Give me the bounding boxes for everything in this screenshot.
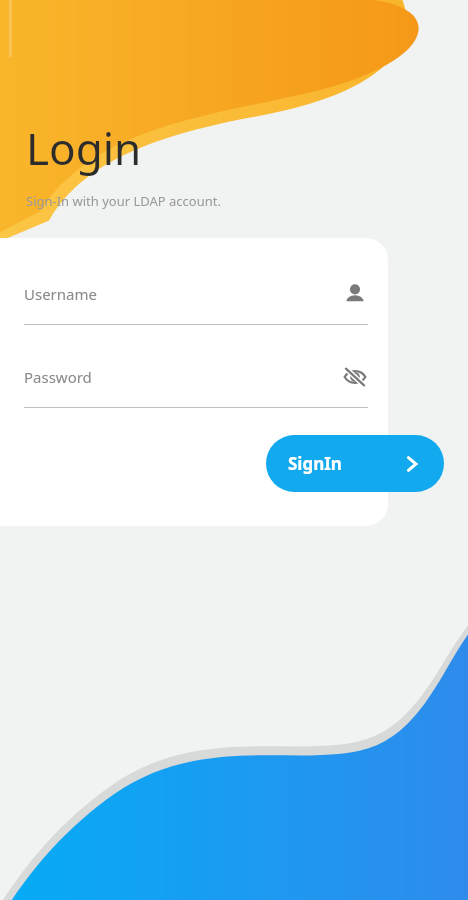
other: Show password [342,364,368,390]
staticText: Sign-In with your LDAP account. [26,192,221,210]
other: Username [342,281,368,307]
button[interactable]: SignIn [266,435,444,492]
button[interactable]: Username [24,276,368,325]
staticText: Password [24,367,92,387]
staticText: Username [24,284,97,304]
button[interactable]: Password [24,359,368,408]
staticText: Login [26,118,142,178]
staticText: SignIn [288,452,342,475]
